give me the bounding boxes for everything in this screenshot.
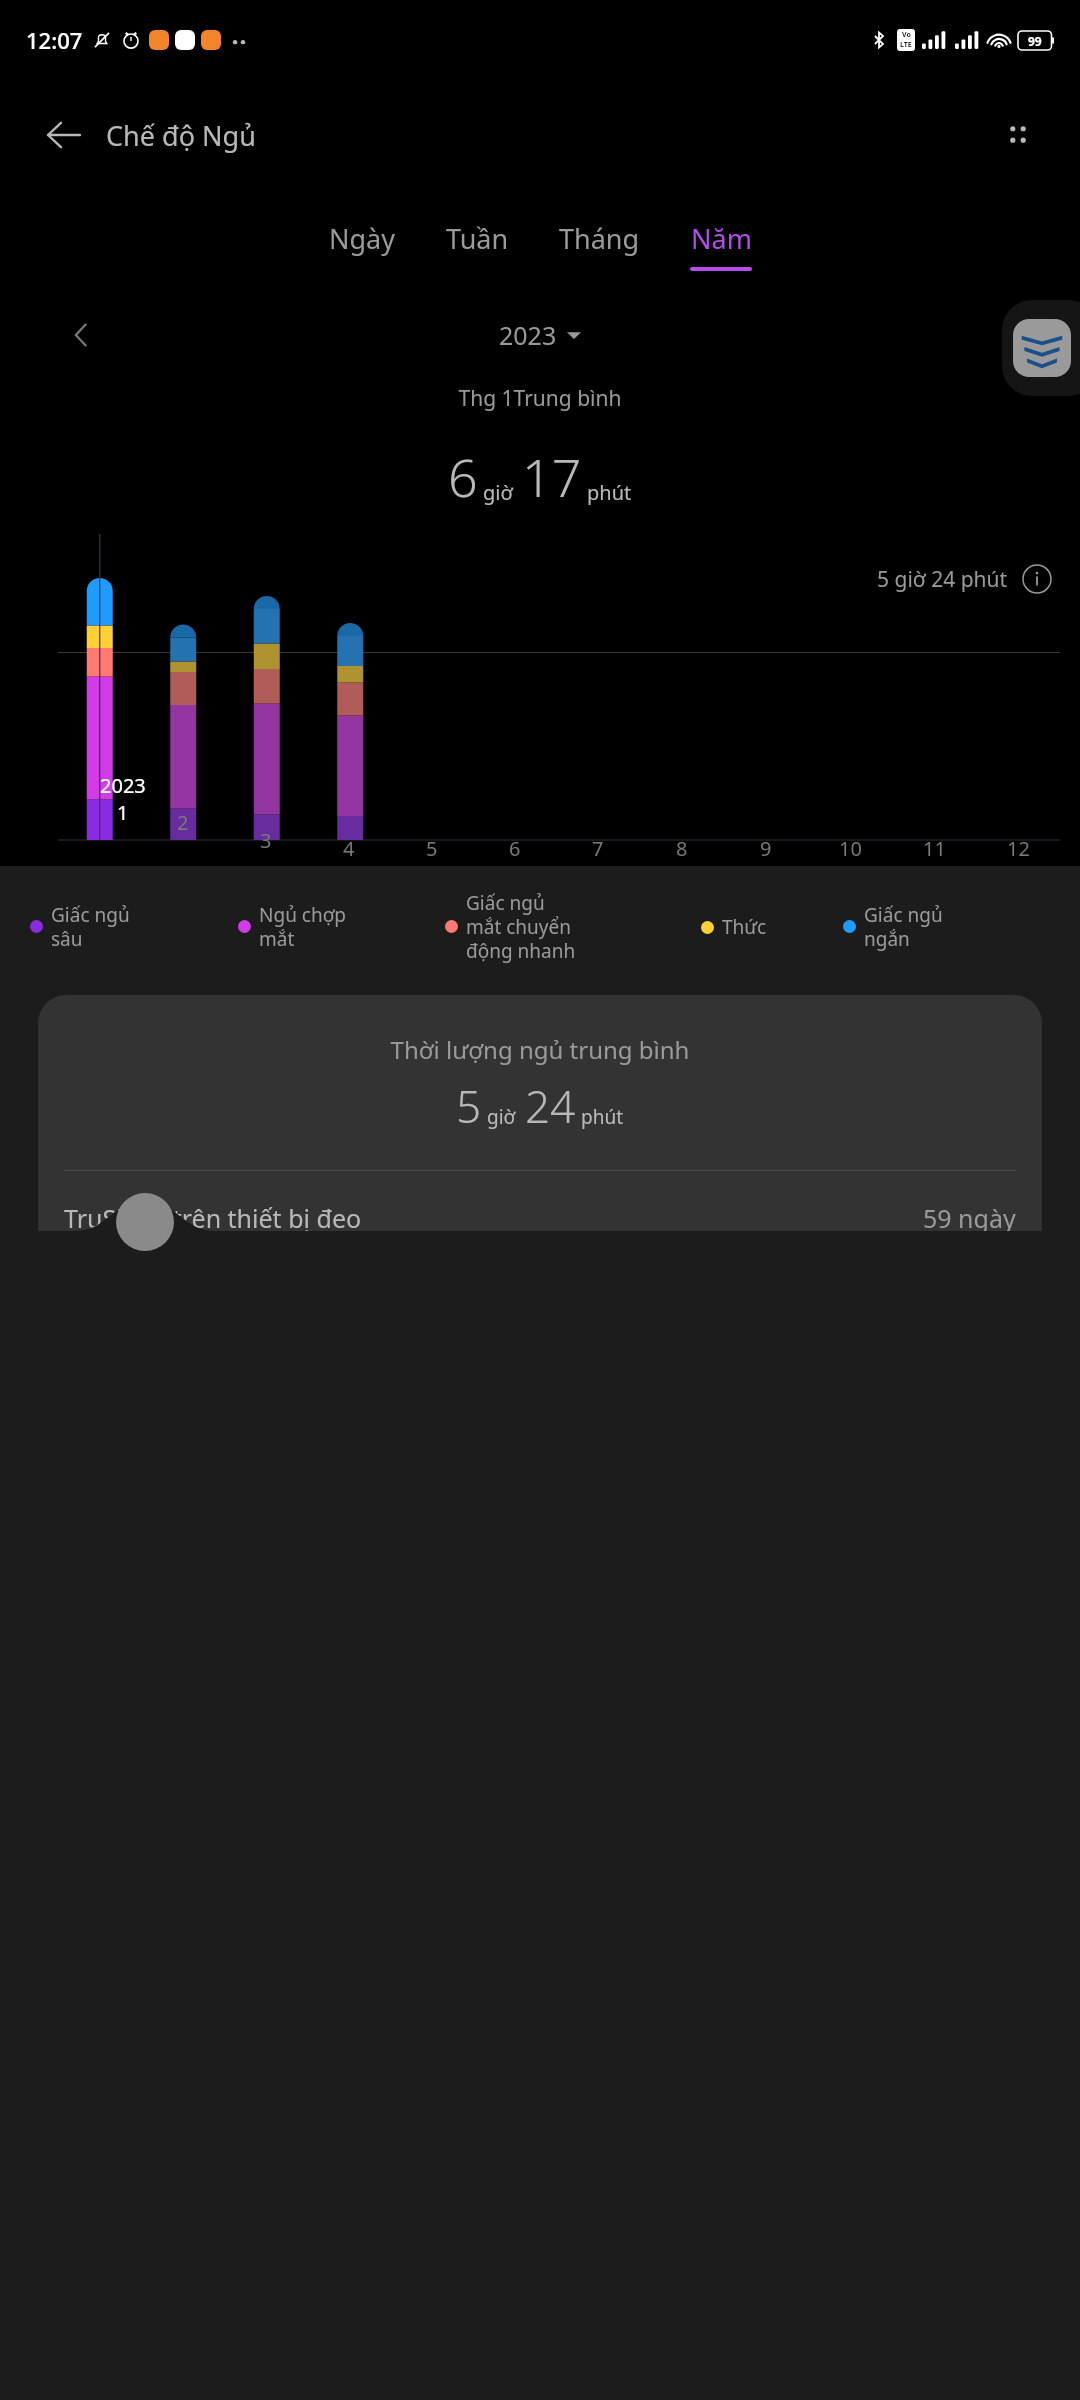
staticText: giờ <box>483 479 513 506</box>
staticText: 59 ngày <box>923 1201 1016 1235</box>
staticText: Thg 1Trung bình <box>0 384 1080 413</box>
staticText: 2023 <box>499 318 557 352</box>
button[interactable]: More options <box>990 107 1046 163</box>
staticText: Ngày <box>329 220 396 257</box>
staticText: 17 <box>522 441 582 512</box>
staticText: Chế độ Ngủ <box>106 117 256 154</box>
button[interactable]: 2023 <box>493 312 587 358</box>
staticText: Giấc ngủ mắt chuyển động nhanh <box>466 890 576 963</box>
staticText: Tuần <box>446 220 509 257</box>
staticText: Ngủ chợp mắt <box>259 902 347 951</box>
button[interactable]: Năm <box>686 220 756 271</box>
button[interactable]: App shortcut <box>1002 300 1080 396</box>
staticText: 10 <box>839 835 862 862</box>
staticText: Tháng <box>559 220 640 257</box>
staticText: Giấc ngủ ngắn <box>864 902 943 951</box>
staticText: 99 <box>1028 33 1042 49</box>
button[interactable]: Info <box>1018 560 1056 598</box>
staticText: 6 <box>509 835 521 862</box>
staticText: Năm <box>691 220 752 257</box>
staticText: 2 <box>177 809 189 836</box>
button[interactable]: Giấc ngủ sâu <box>30 902 238 951</box>
staticText: 12:07 <box>26 25 83 55</box>
staticText: 7 <box>592 835 604 862</box>
staticText: LTE <box>900 40 912 50</box>
staticText: 4 <box>343 835 355 862</box>
button[interactable]: Giấc ngủ ngắn <box>843 902 1050 951</box>
staticText: 5 <box>426 835 438 862</box>
button[interactable]: Previous year <box>56 310 106 360</box>
staticText: giờ <box>487 1104 516 1130</box>
staticText: 11 <box>923 835 946 862</box>
staticText: 5 giờ 24 phút <box>877 565 1008 594</box>
staticText: Giấc ngủ sâu <box>51 902 130 951</box>
staticText: 9 <box>760 835 772 862</box>
staticText: Thức <box>722 914 767 940</box>
button[interactable]: Giấc ngủ mắt chuyển động nhanh <box>445 890 701 963</box>
button[interactable]: Tháng <box>555 220 644 267</box>
staticText: Vo <box>902 30 911 40</box>
staticText: 8 <box>676 835 688 862</box>
button[interactable]: Back <box>36 107 92 163</box>
button[interactable]: Tuần <box>442 220 513 267</box>
button[interactable]: TruSleep trên thiết bị đeo <box>38 1171 1042 1265</box>
staticText: phút <box>587 479 632 506</box>
staticText: TruSleep trên thiết bị đeo <box>64 1201 362 1235</box>
staticText: Thời lượng ngủ trung bình <box>38 1033 1042 1066</box>
staticText: phút <box>581 1104 624 1130</box>
button[interactable]: Ngày <box>325 220 400 267</box>
staticText: 2023 <box>100 772 146 799</box>
staticText: 12 <box>1007 835 1030 862</box>
staticText: 3 <box>260 827 272 854</box>
staticText: 24 <box>525 1076 576 1136</box>
button[interactable]: Thức <box>701 914 843 940</box>
button[interactable]: Ngủ chợp mắt <box>238 902 445 951</box>
staticText: 6 <box>448 441 478 512</box>
staticText: 5 <box>456 1076 482 1136</box>
staticText: 1 <box>117 799 129 826</box>
